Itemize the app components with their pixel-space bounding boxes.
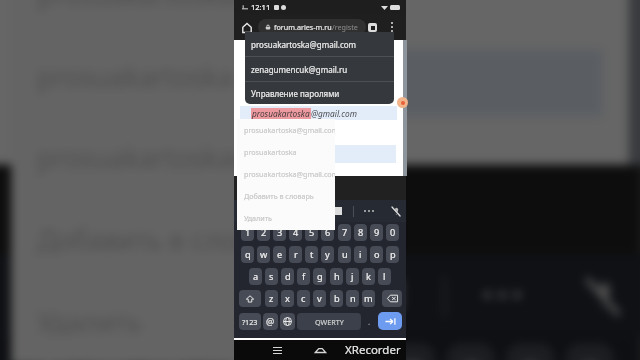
button[interactable]: z bbox=[265, 290, 278, 307]
staticText: prosuakartoska@gmail.com bbox=[244, 125, 335, 135]
staticText: g bbox=[317, 270, 323, 283]
button[interactable]: 9 bbox=[370, 224, 383, 241]
button[interactable]: More bbox=[361, 203, 377, 219]
button[interactable]: b bbox=[330, 290, 343, 307]
button[interactable]: g bbox=[313, 268, 326, 285]
button[interactable]: prosuakartoska bbox=[237, 141, 335, 163]
button[interactable]: h bbox=[330, 268, 343, 285]
button[interactable]: y bbox=[321, 246, 334, 263]
button[interactable]: prosuakartoska bbox=[11, 34, 376, 116]
button[interactable]: Добавить в словарь bbox=[11, 198, 376, 280]
staticText: prosuakartoska@gmail.com bbox=[37, 139, 376, 176]
button[interactable]: n bbox=[346, 290, 359, 307]
staticText: r bbox=[294, 248, 298, 261]
button[interactable]: 8 bbox=[354, 224, 367, 241]
button[interactable]: a bbox=[249, 268, 262, 285]
button[interactable]: . bbox=[362, 313, 376, 330]
button[interactable]: Управление паролями bbox=[245, 82, 394, 104]
button[interactable]: s bbox=[265, 268, 278, 285]
button[interactable]: u bbox=[338, 246, 351, 263]
button[interactable]: l bbox=[378, 268, 391, 285]
button[interactable] bbox=[239, 290, 261, 307]
button[interactable]: ?123 bbox=[239, 313, 261, 330]
button[interactable]: Clipboard bbox=[330, 203, 346, 219]
button[interactable]: prosuakartoska@gmail.com bbox=[237, 163, 335, 185]
button[interactable]: Tabs bbox=[365, 20, 380, 35]
button[interactable]: Change language bbox=[280, 313, 295, 330]
button[interactable]: Clipboard bbox=[357, 265, 417, 325]
button[interactable]: 6 bbox=[324, 343, 372, 360]
button[interactable] bbox=[382, 290, 402, 307]
staticText: forum.aries-m.ru bbox=[274, 22, 332, 32]
staticText: k bbox=[366, 270, 371, 283]
button[interactable]: Удалить bbox=[237, 207, 335, 229]
button[interactable]: 7 bbox=[338, 224, 351, 241]
button[interactable]: Go bbox=[378, 312, 402, 330]
button[interactable]: More options bbox=[385, 20, 399, 34]
button[interactable]: m bbox=[362, 290, 375, 307]
button[interactable]: 5 bbox=[264, 343, 312, 360]
button[interactable]: Home bbox=[239, 20, 254, 35]
button[interactable]: 4 bbox=[205, 343, 253, 360]
button[interactable]: e bbox=[273, 246, 286, 263]
button[interactable]: 2 bbox=[257, 224, 270, 241]
button[interactable]: 5 bbox=[305, 224, 318, 241]
button[interactable]: Добавить в словарь bbox=[237, 185, 335, 207]
button[interactable]: d bbox=[281, 268, 294, 285]
button[interactable]: j bbox=[346, 268, 359, 285]
staticText: 3 bbox=[277, 226, 283, 239]
staticText: @gmail.com bbox=[311, 108, 357, 119]
button[interactable]: prosuakartoska@gmail.com bbox=[245, 32, 394, 56]
button[interactable]: q bbox=[241, 246, 254, 263]
staticText: l bbox=[383, 270, 386, 283]
button[interactable]: prosuakartoska@gmail.com bbox=[237, 119, 335, 141]
button[interactable]: 0 bbox=[386, 224, 399, 241]
button[interactable]: prosuakartoska@gmail.com bbox=[11, 0, 376, 34]
button[interactable]: 3 bbox=[273, 224, 286, 241]
staticText: x bbox=[285, 292, 290, 305]
button[interactable]: 7 bbox=[387, 343, 435, 360]
button[interactable]: t bbox=[305, 246, 318, 263]
button[interactable]: c bbox=[297, 290, 310, 307]
button[interactable]: Home bbox=[311, 341, 329, 359]
button[interactable]: 8 bbox=[446, 343, 495, 360]
button[interactable]: x bbox=[281, 290, 294, 307]
button[interactable]: i bbox=[354, 246, 367, 263]
staticText: prosuakartoska bbox=[244, 147, 297, 157]
staticText: c bbox=[301, 292, 306, 305]
button[interactable]: w bbox=[257, 246, 270, 263]
button[interactable]: r bbox=[289, 246, 302, 263]
button[interactable]: zenagumencuk@gmail.ru bbox=[245, 57, 394, 81]
staticText: /registe bbox=[332, 22, 358, 32]
button[interactable]: Voice input off bbox=[388, 203, 404, 219]
button[interactable]: @ bbox=[263, 313, 278, 330]
button[interactable]: o bbox=[370, 246, 383, 263]
button[interactable]: prosuakartoska@gmail.com bbox=[11, 116, 376, 198]
staticText: Удалить bbox=[244, 213, 273, 223]
staticText: a bbox=[253, 270, 259, 283]
button[interactable]: k bbox=[362, 268, 375, 285]
button[interactable]: Удалить bbox=[11, 280, 376, 360]
button[interactable]: forum.aries-m.ru bbox=[258, 19, 366, 35]
button[interactable]: 9 bbox=[506, 343, 554, 360]
button[interactable]: p bbox=[386, 246, 399, 263]
button[interactable]: More bbox=[472, 265, 532, 325]
button[interactable]: f bbox=[297, 268, 310, 285]
staticText: 8 bbox=[358, 226, 364, 239]
button[interactable]: 1 bbox=[241, 224, 254, 241]
button[interactable]: 4 bbox=[289, 224, 302, 241]
button[interactable]: Recent apps bbox=[268, 341, 286, 359]
button[interactable]: QWERTY bbox=[297, 313, 361, 330]
button[interactable]: v bbox=[313, 290, 326, 307]
staticText: 2 bbox=[261, 226, 267, 239]
button[interactable]: 0 bbox=[565, 343, 614, 360]
button[interactable]: Voice input off bbox=[573, 265, 632, 325]
button[interactable]: 6 bbox=[321, 224, 334, 241]
staticText: 7 bbox=[342, 226, 348, 239]
